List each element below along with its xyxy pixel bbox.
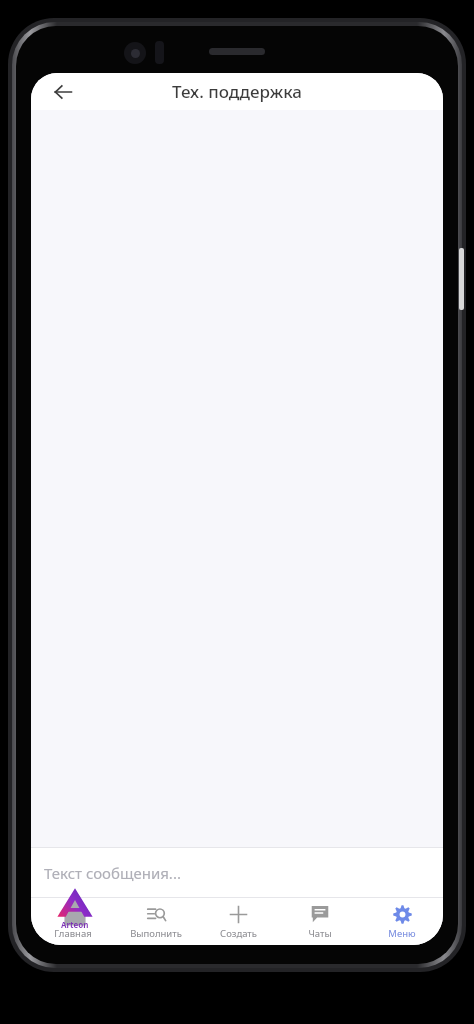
button[interactable]: Главная	[31, 898, 114, 945]
staticText: Главная	[54, 927, 92, 940]
staticText: Меню	[388, 927, 416, 940]
button[interactable]: Создать	[197, 898, 279, 945]
staticText: Тех. поддержка	[172, 80, 302, 103]
staticText: Чаты	[308, 927, 332, 940]
button[interactable]: Меню	[361, 898, 443, 945]
button[interactable]: Чаты	[279, 898, 361, 945]
staticText: Выполнить	[130, 927, 182, 940]
button[interactable]: Текст сообщения...	[31, 848, 443, 897]
button[interactable]: Выполнить	[114, 898, 197, 945]
staticText: Текст сообщения...	[44, 863, 181, 883]
staticText: Создать	[220, 927, 257, 940]
button[interactable]: Назад	[41, 73, 85, 110]
staticText: Arteon	[61, 919, 89, 930]
